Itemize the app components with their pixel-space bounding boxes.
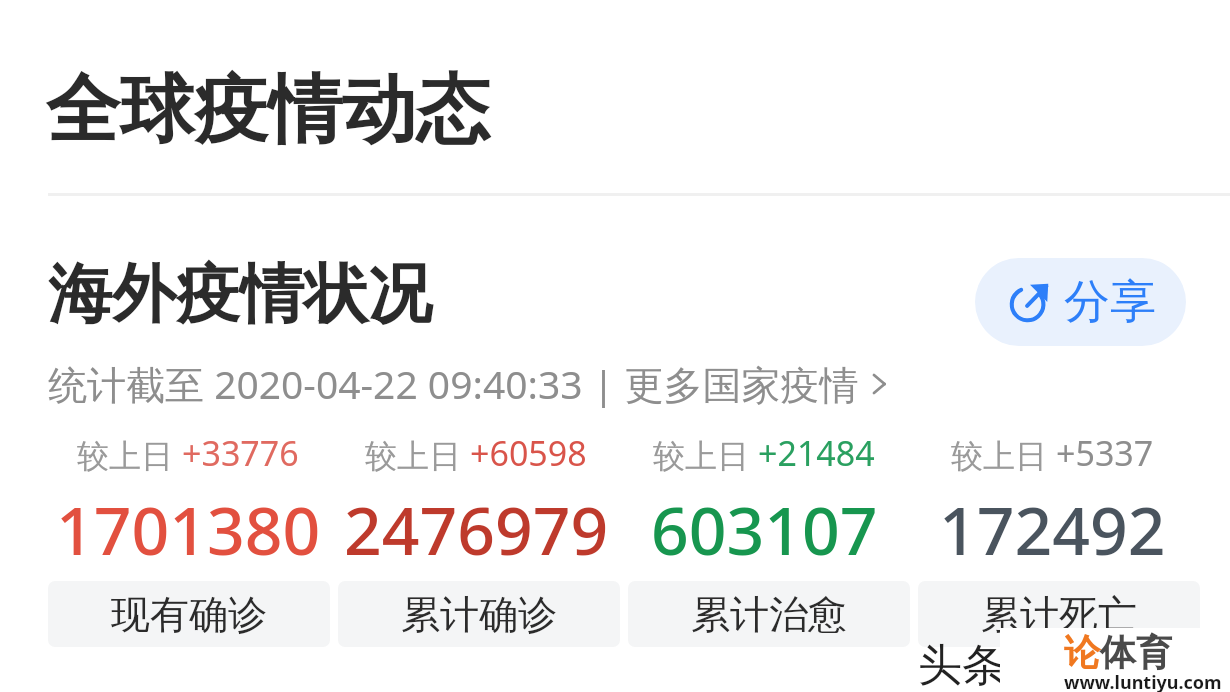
staticText: +33776 [182, 430, 299, 476]
staticText: +21484 [758, 430, 875, 476]
button[interactable]: 累计治愈 [628, 581, 910, 647]
staticText: 2476979 [344, 484, 609, 574]
staticText: www.luntiyu.com [1064, 670, 1222, 692]
staticText: +5337 [1056, 430, 1154, 476]
button[interactable]: 较上日 [332, 430, 620, 574]
button[interactable]: 较上日 [620, 430, 908, 574]
staticText: 累计治愈 [691, 590, 847, 639]
staticText: 全球疫情动态 [46, 64, 490, 157]
staticText: 累计死亡 [981, 590, 1137, 639]
staticText: 1701380 [56, 484, 321, 574]
staticText: 论 [1064, 630, 1100, 675]
button[interactable]: 累计死亡 [918, 581, 1200, 647]
staticText: 累计确诊 [401, 590, 557, 639]
staticText: 海外疫情状况 [48, 254, 432, 335]
button[interactable]: 现有确诊 [48, 581, 330, 647]
staticText: 较上日 [77, 436, 173, 476]
staticText: 较上日 [951, 436, 1047, 476]
button[interactable]: 较上日 [908, 430, 1196, 574]
staticText: 分享 [1064, 273, 1156, 331]
button[interactable]: 累计确诊 [338, 581, 620, 647]
staticText: 头条( [918, 633, 1020, 692]
button[interactable]: Share [975, 258, 1186, 346]
button[interactable]: 较上日 [44, 430, 332, 574]
staticText: 172492 [939, 484, 1166, 574]
other: Share [1006, 278, 1054, 326]
staticText: 体育 [1100, 630, 1172, 675]
staticText: 较上日 [653, 436, 749, 476]
staticText: 现有确诊 [111, 590, 267, 639]
staticText: 统计截至 2020-04-22 09:40:33 | 更多国家疫情 [48, 357, 859, 410]
staticText: 603107 [651, 484, 878, 574]
staticText: 较上日 [365, 436, 461, 476]
button[interactable]: 统计截至 2020-04-22 09:40:33 | 更多国家疫情 [48, 357, 893, 410]
staticText: +60598 [470, 430, 587, 476]
